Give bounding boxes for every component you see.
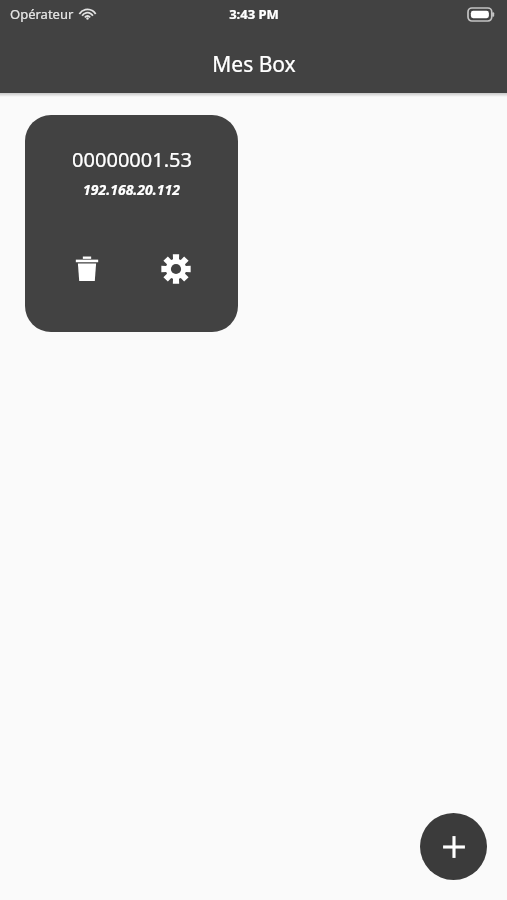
staticText: 00000001.53 bbox=[72, 146, 192, 173]
button[interactable]: Ajouter une box bbox=[420, 813, 487, 880]
button[interactable]: Paramètres bbox=[157, 250, 195, 288]
button[interactable]: Supprimer bbox=[68, 250, 106, 288]
staticText: Mes Box bbox=[212, 50, 296, 79]
staticText: Opérateur bbox=[10, 5, 74, 23]
staticText: 3:43 PM bbox=[229, 5, 279, 23]
button[interactable]: 00000001.53 bbox=[25, 115, 238, 332]
staticText: 192.168.20.112 bbox=[83, 180, 180, 199]
